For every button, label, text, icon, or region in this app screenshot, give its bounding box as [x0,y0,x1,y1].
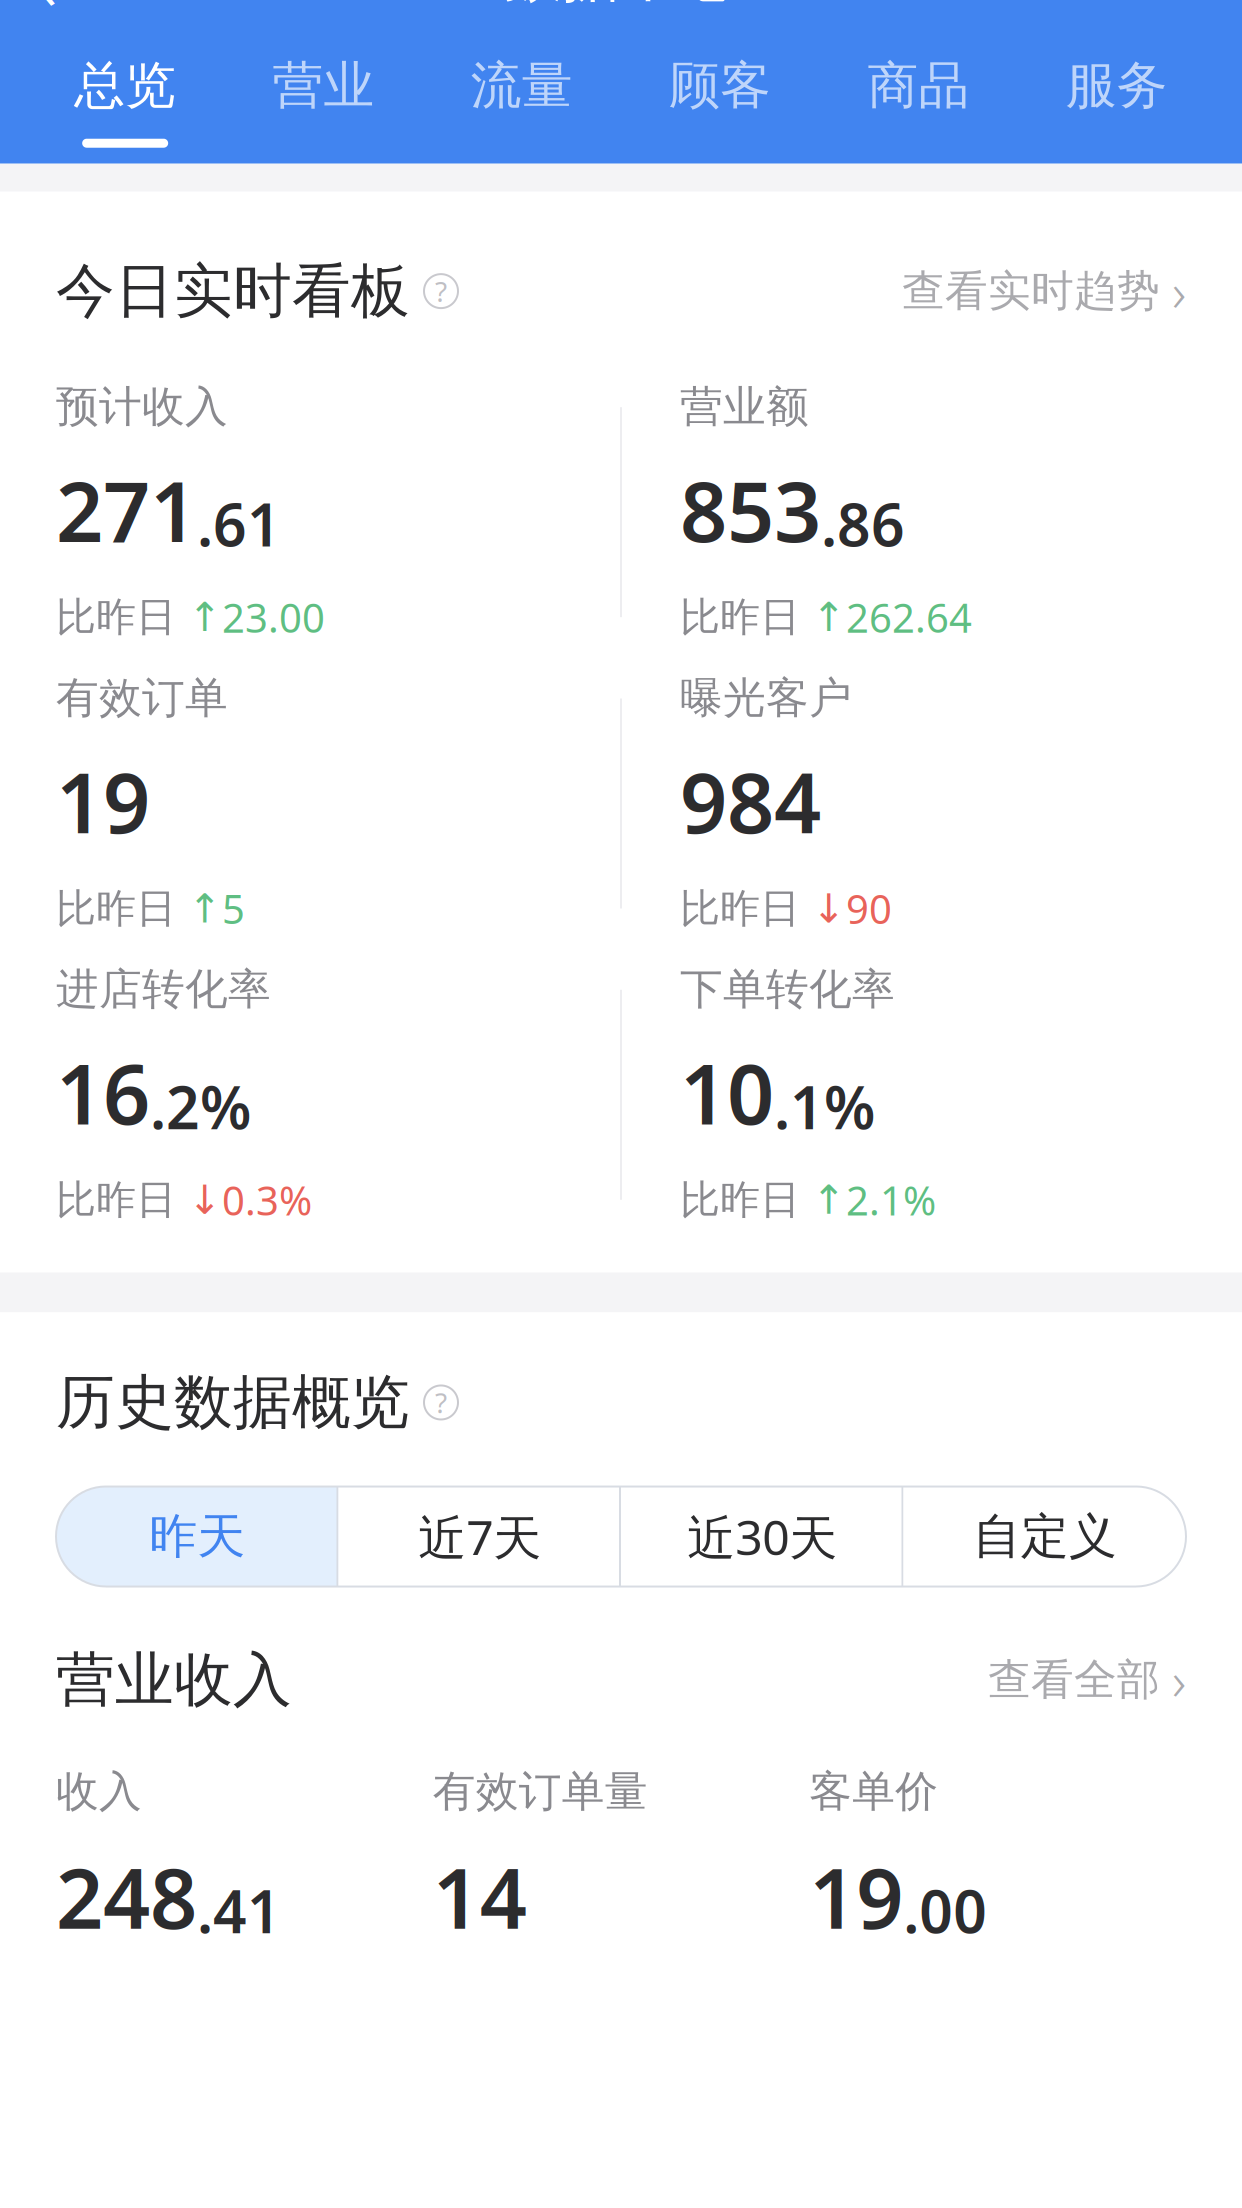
button[interactable]: 返回 [0,0,90,20]
button[interactable]: 服务 [1018,48,1216,154]
staticText: 比昨日 [680,1175,812,1224]
staticText: ↑ [812,595,846,640]
staticText: ↓ [812,886,846,931]
staticText: 进店转化率 [56,963,271,1015]
staticText: 总览 [74,54,176,117]
staticText: ↑ [812,1177,846,1223]
staticText: 248 [56,1842,197,1951]
staticText: 查看实时趋势 [902,265,1160,317]
staticText: 5 [222,882,245,935]
staticText: 262.64 [846,591,972,644]
staticText: 今日实时看板 [56,255,410,327]
button[interactable]: 营业 [224,48,423,154]
staticText: 比昨日 [680,593,812,642]
button[interactable]: 自定义 [903,1486,1186,1586]
staticText: 984 [680,746,821,856]
staticText: 比昨日 [56,593,188,642]
staticText: .61 [197,485,281,563]
staticText: 有效订单量 [433,1765,648,1818]
staticText: 服务 [1066,54,1168,117]
staticText: 有效订单 [56,672,228,724]
staticText: .2% [150,1067,251,1145]
staticText: 近30天 [687,1505,837,1568]
staticText: › [1172,1644,1186,1715]
staticText: 16 [56,1037,150,1147]
staticText: 营业 [272,54,374,117]
staticText: 271 [56,455,197,565]
staticText: .41 [197,1872,281,1949]
staticText: ‹ [32,0,57,39]
button[interactable]: 商品 [819,48,1018,154]
staticText: 历史数据概览 [56,1366,410,1438]
staticText: › [1172,256,1186,326]
staticText: 下单转化率 [680,963,895,1015]
staticText: ↓ [188,1177,222,1223]
staticText: 比昨日 [56,884,188,933]
button[interactable]: 查看全部 [988,1636,1186,1723]
staticText: 查看全部 [988,1654,1160,1706]
staticText: 收入 [56,1765,142,1818]
staticText: 昨天 [149,1507,245,1566]
staticText: ? [435,1384,447,1421]
staticText: 数据中心 [503,0,739,11]
staticText: ? [435,272,447,310]
staticText: 客单价 [809,1765,938,1818]
staticText: 853 [680,455,821,565]
staticText: 19 [56,746,150,856]
staticText: 顾客 [669,54,771,117]
staticText: 自定义 [973,1507,1117,1566]
staticText: 营业额 [680,380,809,433]
button[interactable]: 近30天 [621,1486,903,1586]
staticText: ↑ [188,595,222,640]
staticText: 预计收入 [56,380,228,433]
staticText: 19 [809,1842,903,1951]
staticText: .1% [774,1067,875,1145]
staticText: 比昨日 [56,1175,188,1224]
button[interactable]: 查看实时趋势 [902,248,1186,334]
staticText: 近7天 [418,1505,541,1568]
staticText: 流量 [471,54,573,117]
staticText: 0.3% [222,1173,312,1226]
button[interactable]: 总览 [26,48,224,154]
staticText: 营业收入 [56,1644,292,1716]
staticText: 14 [433,1842,527,1951]
button[interactable]: 顾客 [621,48,819,154]
staticText: 10 [680,1037,774,1147]
staticText: 曝光客户 [680,672,852,724]
staticText: ↑ [188,886,222,931]
staticText: 90 [846,882,892,935]
staticText: 2.1% [846,1173,936,1226]
button[interactable]: 近7天 [338,1486,621,1586]
staticText: .00 [903,1872,987,1949]
staticText: 商品 [867,54,969,117]
button[interactable]: 昨天 [56,1486,338,1586]
staticText: 比昨日 [680,884,812,933]
button[interactable]: 流量 [423,48,621,154]
staticText: 23.00 [222,591,325,644]
staticText: .86 [821,485,905,563]
